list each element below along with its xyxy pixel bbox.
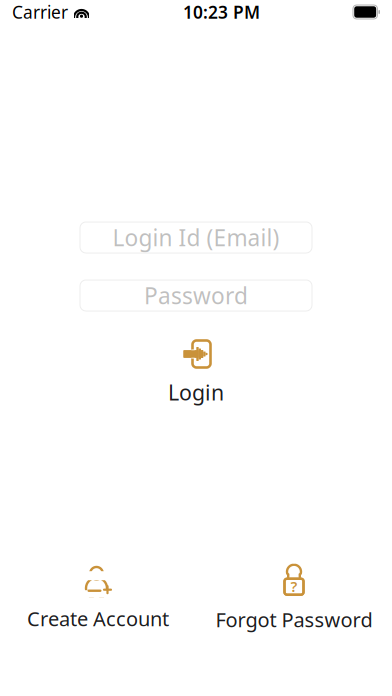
button[interactable]: Create Account [17,562,179,636]
staticText: Forgot Password [215,606,372,633]
staticText: 10:23 PM [183,0,260,23]
staticText: Carrier [12,0,68,23]
staticText: Login [168,378,224,406]
staticText: Login Id (Email) [112,222,279,252]
button[interactable]: Login [158,335,234,410]
button[interactable]: ? [205,561,382,637]
staticText: Create Account [27,605,169,632]
staticText: ? [290,576,297,596]
staticText: Password [144,280,248,310]
